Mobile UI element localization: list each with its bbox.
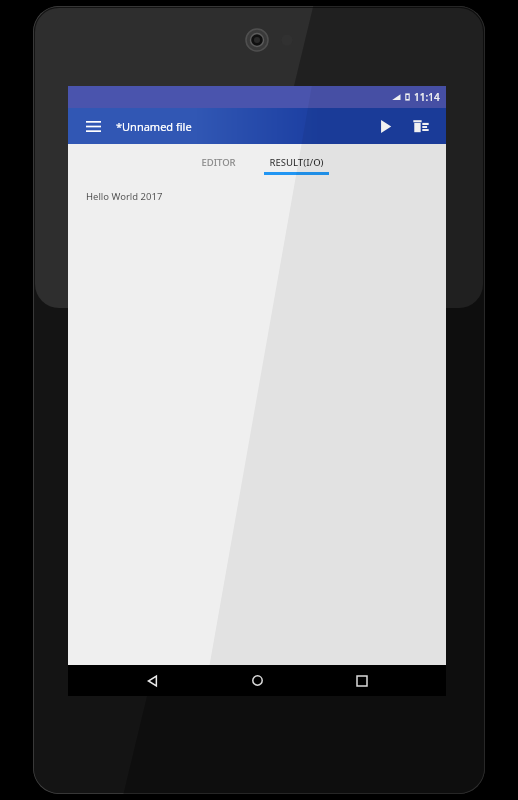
button[interactable]: Back bbox=[133, 665, 173, 696]
button[interactable]: Recent apps bbox=[342, 665, 382, 696]
button[interactable]: Run bbox=[370, 111, 400, 141]
staticText: EDITOR bbox=[201, 156, 236, 169]
button[interactable]: Open navigation drawer bbox=[80, 113, 106, 139]
staticText: 11:14 bbox=[414, 90, 440, 104]
button[interactable]: RESULT(I/O) bbox=[257, 144, 335, 180]
staticText: RESULT(I/O) bbox=[269, 156, 324, 169]
staticText: Hello World 2017 bbox=[86, 190, 163, 203]
button[interactable]: Home bbox=[237, 665, 277, 696]
staticText: *Unnamed file bbox=[116, 119, 192, 134]
button[interactable]: Clear output bbox=[406, 111, 436, 141]
button[interactable]: EDITOR bbox=[179, 144, 257, 180]
